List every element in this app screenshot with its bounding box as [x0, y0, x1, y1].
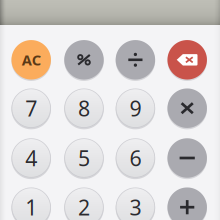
button[interactable]: Percent: [63, 38, 104, 81]
staticText: 1: [25, 193, 37, 220]
staticText: AC: [22, 50, 41, 70]
button[interactable]: 3: [115, 186, 156, 220]
button[interactable]: 9: [115, 87, 156, 129]
staticText: 5: [78, 144, 90, 172]
button[interactable]: 5: [63, 137, 104, 179]
button[interactable]: Add: [167, 186, 208, 220]
button[interactable]: AC: [11, 38, 52, 81]
button[interactable]: 6: [115, 137, 156, 179]
staticText: 6: [129, 144, 141, 172]
button[interactable]: 7: [11, 87, 52, 129]
staticText: 9: [129, 94, 141, 122]
staticText: 3: [129, 193, 141, 220]
button[interactable]: 1: [11, 186, 52, 220]
staticText: 4: [25, 144, 37, 172]
button[interactable]: 2: [63, 186, 104, 220]
staticText: 2: [78, 193, 90, 220]
button[interactable]: 8: [63, 87, 104, 129]
button[interactable]: Subtract: [167, 137, 208, 179]
button[interactable]: 4: [11, 137, 52, 179]
staticText: 7: [25, 94, 37, 122]
button[interactable]: Multiply: [167, 87, 208, 129]
button[interactable]: Delete: [167, 38, 208, 81]
staticText: 8: [78, 94, 90, 122]
button[interactable]: Divide: [115, 38, 156, 81]
